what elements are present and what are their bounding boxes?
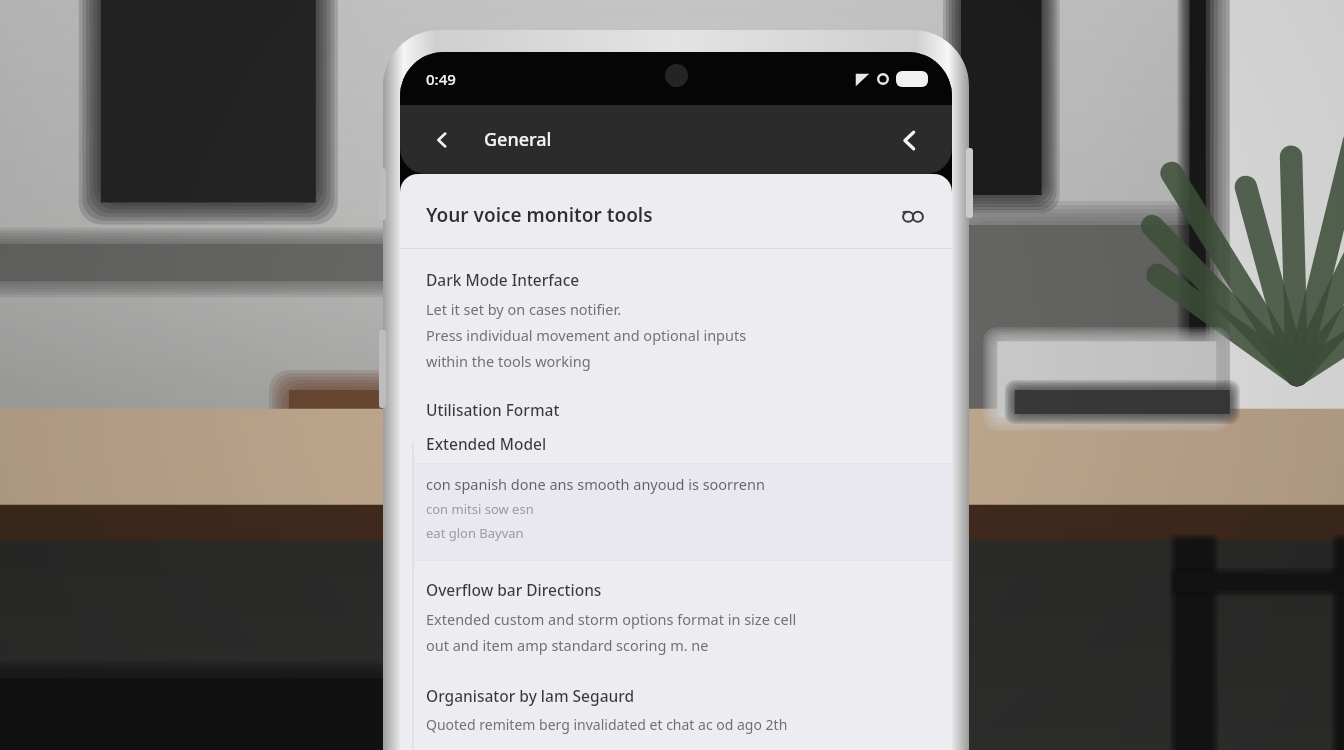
button[interactable]: Overflow bar Directions (400, 575, 952, 609)
button[interactable]: Extended Model (400, 429, 952, 463)
button[interactable]: Back (422, 120, 462, 160)
staticText: Your voice monitor tools (426, 202, 896, 228)
staticText: con spanish done ans smooth anyoud is so… (426, 474, 934, 494)
staticText: Let it set by on cases notifier. (426, 299, 934, 319)
staticText: within the tools working (426, 351, 934, 371)
button[interactable]: Utilisation Format (400, 395, 952, 429)
staticText: eat glon Bayvan (426, 524, 934, 542)
button[interactable]: Organisator by lam Segaurd (400, 681, 952, 715)
button[interactable]: Collapse (888, 119, 930, 161)
staticText: out and item amp standard scoring m. ne (426, 635, 934, 655)
button[interactable]: con spanish done ans smooth anyoud is so… (413, 463, 952, 561)
button[interactable]: Monitor settings (896, 198, 930, 232)
button[interactable]: Dark Mode Interface (400, 265, 952, 299)
staticText: Press individual movement and optional i… (426, 325, 934, 345)
staticText: Extended custom and storm options format… (426, 609, 934, 629)
button[interactable]: Your voice monitor tools (400, 184, 952, 248)
staticText: Quoted remitem berg invalidated et chat … (426, 715, 934, 734)
staticText: 0:49 (426, 69, 456, 89)
staticText: General (484, 127, 552, 152)
staticText: con mitsi sow esn (426, 500, 934, 518)
